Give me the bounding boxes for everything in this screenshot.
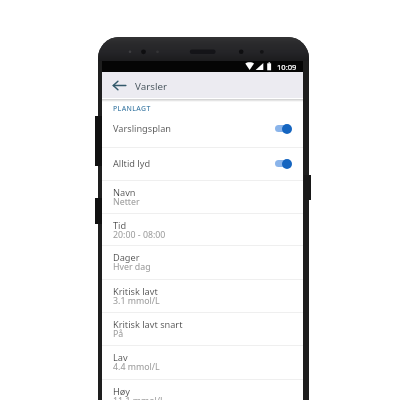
button[interactable]: Dager	[102, 246, 303, 279]
button[interactable]: Alltid lyd	[102, 148, 303, 180]
button[interactable]: Back	[105, 77, 122, 94]
staticText: Kritisk lavt	[113, 285, 158, 298]
button[interactable]: Varslingsplan	[102, 113, 303, 147]
staticText: På	[113, 328, 124, 340]
staticText: Lav	[113, 351, 128, 364]
staticText: PLANLAGT	[113, 104, 151, 113]
staticText: 10:09	[277, 62, 297, 72]
button[interactable]: Høy	[102, 380, 303, 400]
button[interactable]: Tid	[102, 214, 303, 245]
button[interactable]: Navn	[102, 181, 303, 213]
staticText: Alltid lyd	[113, 157, 151, 170]
staticText: Dager	[113, 251, 140, 264]
staticText: Kritisk lavt snart	[113, 318, 183, 331]
button[interactable]: Kritisk lavt	[102, 280, 303, 312]
staticText: Tid	[113, 219, 127, 232]
staticText: 20:00 - 08:00	[113, 229, 166, 241]
staticText: Varslingsplan	[113, 122, 172, 135]
staticText: 11.1 mmol/L	[113, 395, 165, 400]
staticText: 3.1 mmol/L	[113, 295, 160, 307]
button[interactable]: Lav	[102, 346, 303, 379]
staticText: Navn	[113, 186, 136, 199]
staticText: Høy	[113, 385, 130, 398]
staticText: Varsler	[135, 80, 168, 93]
button[interactable]: Kritisk lavt snart	[102, 313, 303, 345]
staticText: Netter	[113, 196, 140, 208]
staticText: 4.4 mmol/L	[113, 361, 160, 373]
staticText: Hver dag	[113, 261, 151, 273]
